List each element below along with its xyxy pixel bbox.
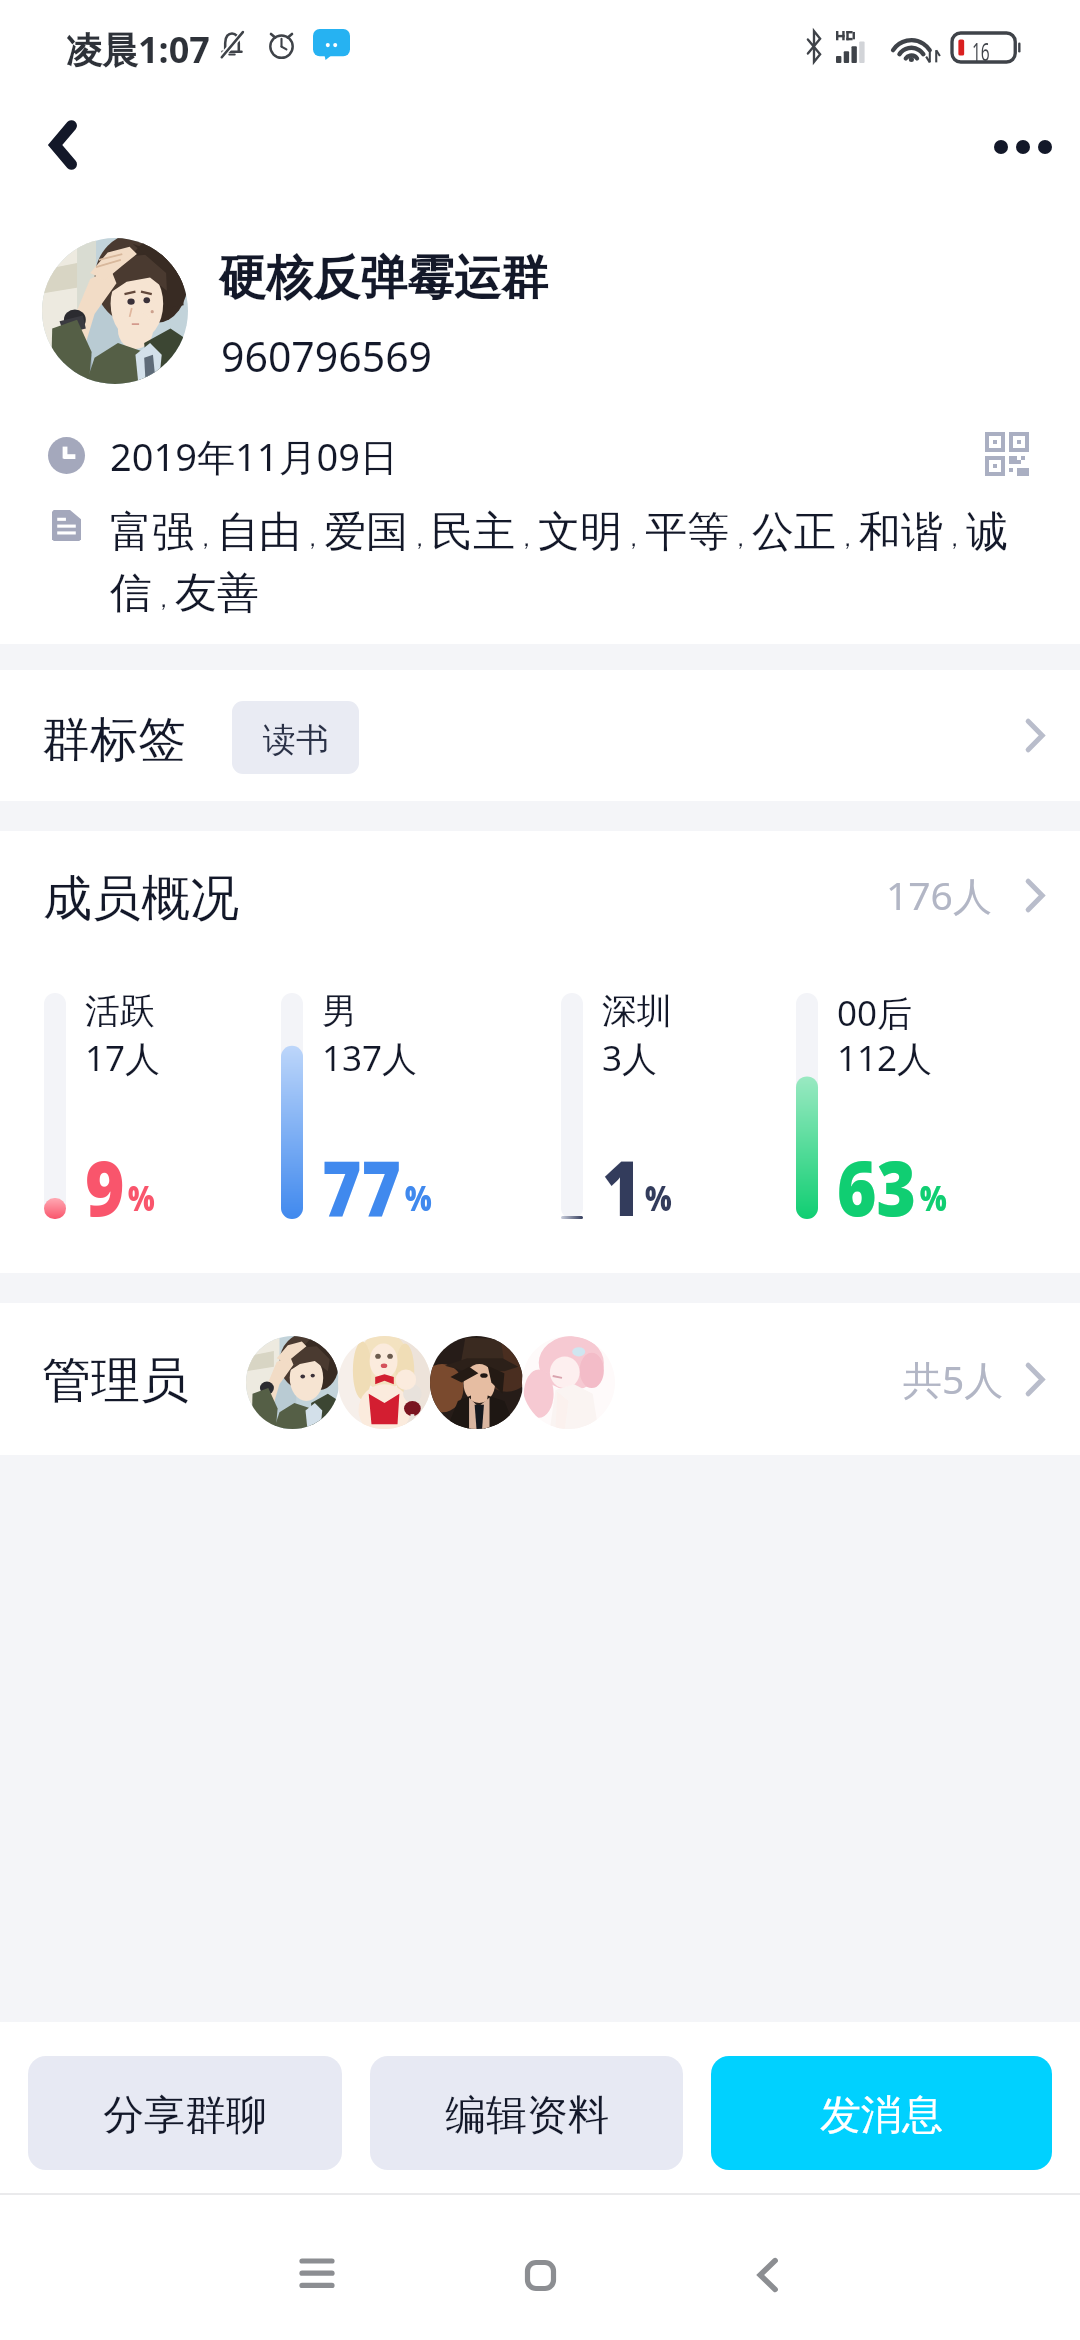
staticText: 读书 [263, 719, 329, 761]
staticText: % [645, 1173, 672, 1222]
staticText: 176人 [886, 868, 992, 921]
button[interactable]: More options [972, 107, 1074, 187]
staticText: % [920, 1173, 947, 1222]
staticText: 群标签 [42, 710, 186, 770]
button[interactable]: 发消息 [711, 2056, 1052, 2170]
button[interactable]: 分享群聊 [28, 2056, 342, 2170]
staticText: 77 [322, 1134, 402, 1239]
button[interactable]: Group avatar [42, 238, 188, 384]
staticText: 活跃 [85, 989, 155, 1033]
button[interactable]: QR code [970, 417, 1044, 491]
staticText: 深圳 [602, 989, 672, 1033]
staticText: 9 [85, 1134, 125, 1239]
button[interactable]: 成员概况 [0, 831, 1080, 961]
button[interactable]: Home [460, 2215, 620, 2335]
staticText: 3人 [602, 1034, 658, 1082]
staticText: 凌晨1:07 [66, 25, 210, 74]
staticText: 管理员 [42, 1350, 189, 1412]
button[interactable]: 管理员 [0, 1303, 1080, 1455]
staticText: 成员概况 [43, 868, 239, 930]
staticText: 男 [322, 989, 357, 1033]
staticText: 发消息 [820, 2090, 943, 2142]
staticText: 63 [837, 1134, 917, 1239]
button[interactable]: 编辑资料 [370, 2056, 683, 2170]
staticText: 1 [602, 1134, 642, 1239]
staticText: 16 [972, 34, 990, 68]
button[interactable]: 群标签 [0, 670, 1080, 801]
staticText: 共5人 [903, 1352, 1004, 1405]
staticText: 17人 [85, 1034, 161, 1082]
staticText: % [128, 1173, 155, 1222]
staticText: 2019年11月09日 [110, 430, 398, 482]
staticText: 137人 [322, 1034, 418, 1082]
staticText: 硬核反弹霉运群 [219, 249, 548, 308]
staticText: 富强，自由，爱国，民主，文明，平等，公正，和谐，诚信，友善 [110, 506, 1020, 619]
staticText: 112人 [837, 1034, 933, 1082]
staticText: 分享群聊 [103, 2090, 267, 2142]
button[interactable]: Recent apps [237, 2215, 397, 2335]
staticText: 编辑资料 [445, 2090, 609, 2142]
staticText: 00后 [837, 989, 913, 1037]
staticText: % [405, 1173, 432, 1222]
button[interactable]: Back [23, 105, 103, 185]
button[interactable]: Back [687, 2215, 847, 2335]
staticText: 960796569 [221, 328, 433, 384]
